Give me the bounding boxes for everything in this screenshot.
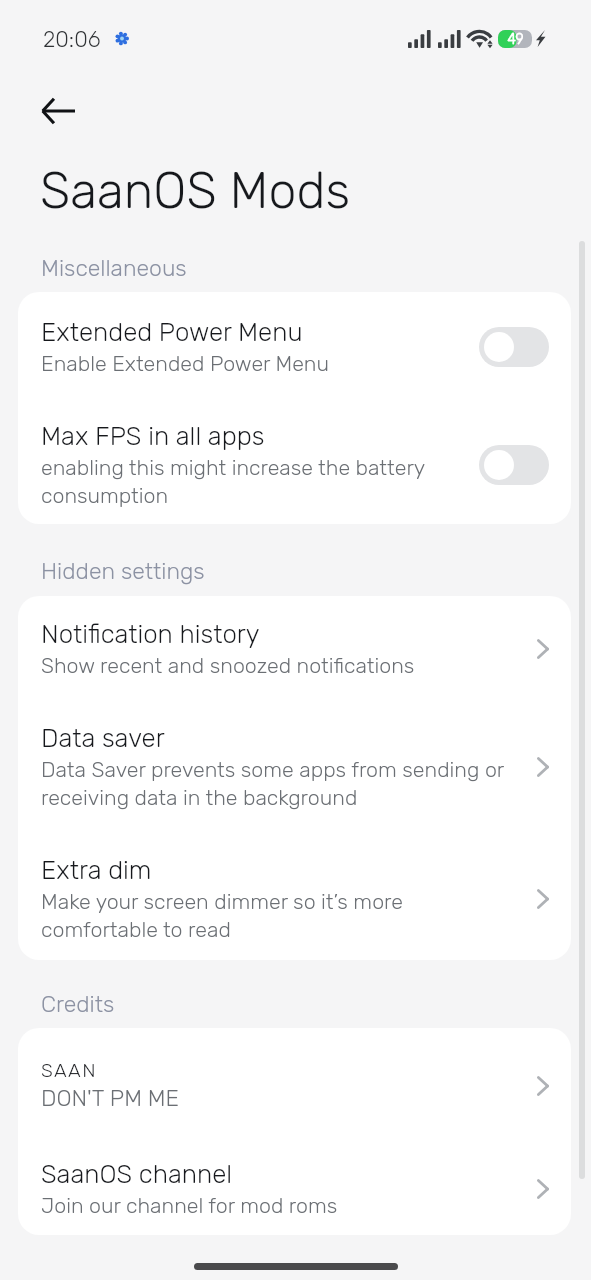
button[interactable]: SAAN [18,1028,571,1112]
staticText: Show recent and snoozed notifications [41,653,415,678]
staticText: Extended Power Menu [41,317,303,348]
staticText: Miscellaneous [41,254,187,281]
staticText: Notification history [41,619,260,650]
staticText: SAAN [41,1059,97,1082]
staticText: Data Saver prevents some apps from sendi… [41,757,511,811]
staticText: Credits [41,990,115,1017]
staticText: Join our channel for mod roms [41,1193,338,1218]
staticText: Enable Extended Power Menu [41,351,330,376]
other: Settings [116,32,128,45]
staticText: DON'T PM ME [41,1085,180,1112]
staticText: Data saver [41,723,165,754]
button[interactable]: Back [31,83,87,139]
button[interactable]: Extended Power Menu [18,292,571,376]
staticText: 49 [507,31,524,48]
button[interactable]: Notification history [18,596,571,678]
staticText: 20:06 [43,26,101,52]
staticText: SaanOS channel [41,1159,233,1190]
staticText: Extra dim [41,855,152,886]
button[interactable]: Extra dim [18,811,571,943]
staticText: Hidden settings [41,557,205,584]
staticText: Make your screen dimmer so it’s more com… [41,889,511,943]
staticText: SaanOS Mods [40,161,351,220]
button[interactable]: Data saver [18,678,571,811]
button[interactable]: Max FPS in all apps [18,376,571,509]
staticText: Max FPS in all apps [41,421,265,452]
staticText: enabling this might increase the battery… [41,455,469,509]
button[interactable]: SaanOS channel [18,1112,571,1218]
